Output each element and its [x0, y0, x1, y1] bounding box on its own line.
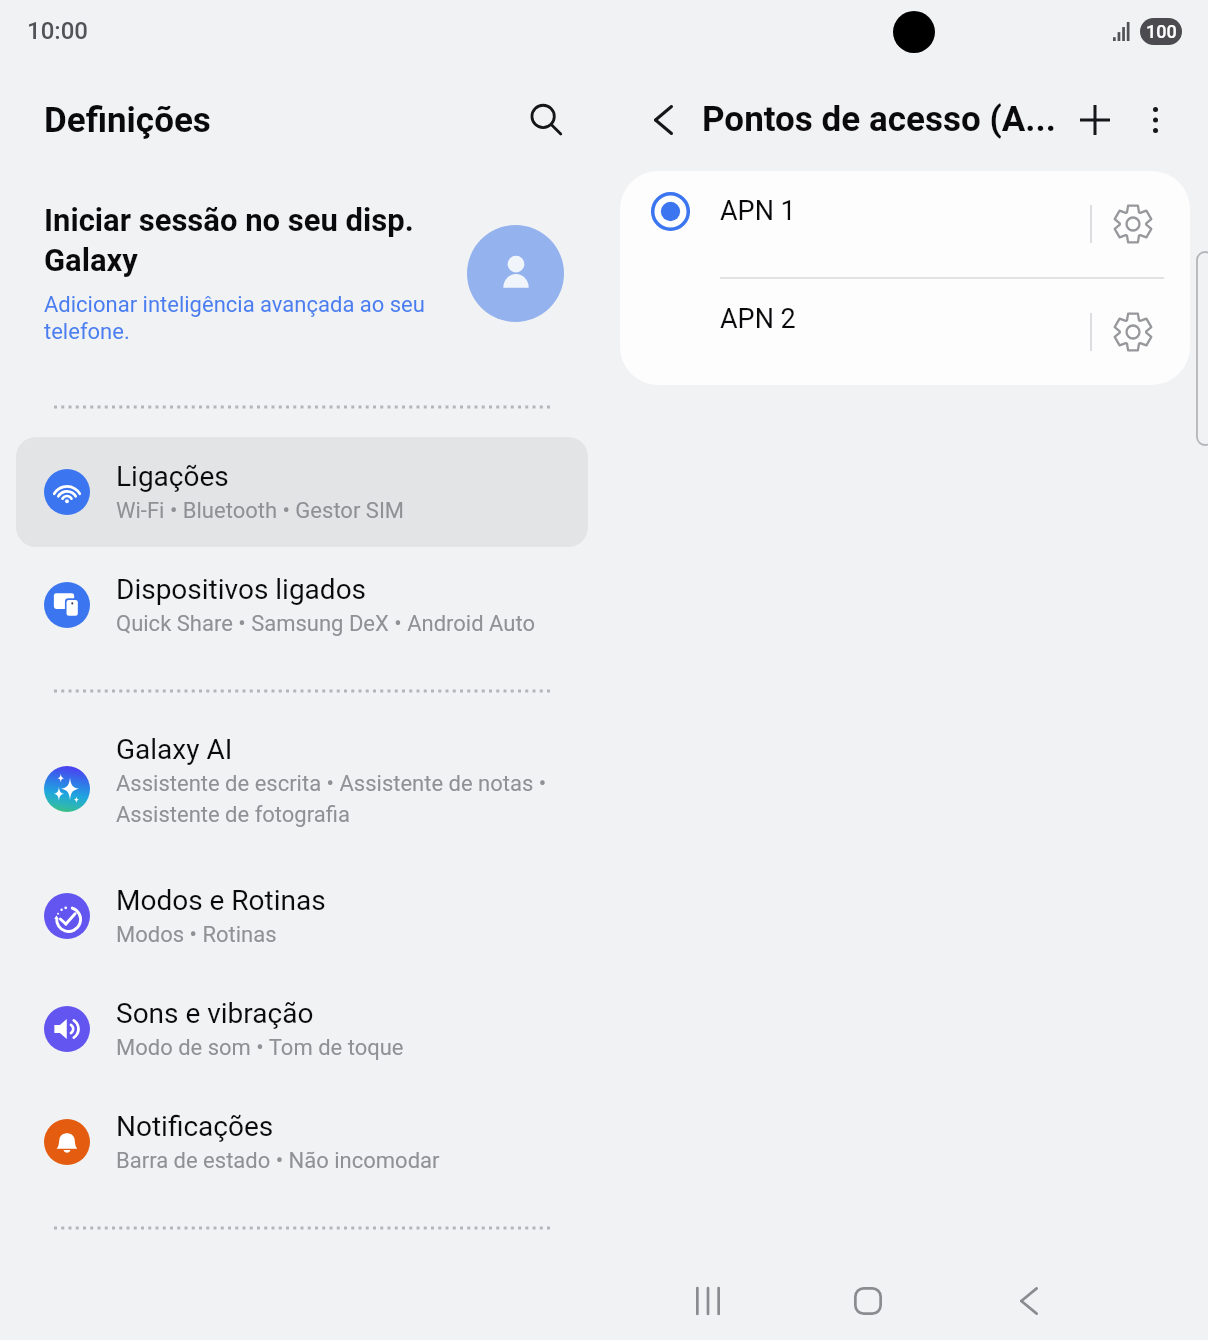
- button[interactable]: APN 1: [620, 171, 1190, 277]
- button[interactable]: Galaxy AI: [16, 716, 588, 844]
- button[interactable]: Iniciar sessão no seu disp. Galaxy: [0, 178, 604, 403]
- staticText: Adicionar inteligência avançada ao seu t…: [44, 292, 451, 345]
- button[interactable]: Back: [984, 1256, 1074, 1340]
- button[interactable]: Notificações: [16, 1087, 588, 1197]
- staticText: Modos • Rotinas: [116, 922, 277, 948]
- button[interactable]: Home: [823, 1256, 913, 1340]
- button[interactable]: APN settings: [1102, 301, 1164, 363]
- staticText: Assistente de escrita • Assistente de no…: [116, 771, 572, 827]
- staticText: Definições: [44, 100, 211, 141]
- staticText: 100: [1146, 21, 1177, 42]
- staticText: Quick Share • Samsung DeX • Android Auto: [116, 611, 535, 637]
- button[interactable]: Ligações: [16, 437, 588, 547]
- staticText: APN 1: [720, 195, 1086, 227]
- button[interactable]: APN settings: [1102, 193, 1164, 255]
- staticText: Wi-Fi • Bluetooth • Gestor SIM: [116, 498, 405, 524]
- button[interactable]: Recents: [663, 1256, 753, 1340]
- button[interactable]: Sons e vibração: [16, 974, 588, 1084]
- staticText: Iniciar sessão no seu disp. Galaxy: [44, 202, 451, 279]
- staticText: Barra de estado • Não incomodar: [116, 1148, 440, 1174]
- button[interactable]: APN 2: [620, 279, 1190, 385]
- staticText: Sons e vibração: [116, 997, 314, 1030]
- button[interactable]: Dispositivos ligados: [16, 550, 588, 660]
- staticText: Modos e Rotinas: [116, 884, 326, 917]
- button[interactable]: More options: [1126, 91, 1184, 149]
- button[interactable]: Modos e Rotinas: [16, 861, 588, 971]
- button[interactable]: Search: [517, 91, 575, 149]
- staticText: 10:00: [27, 17, 88, 45]
- button[interactable]: Navigate up: [634, 91, 692, 149]
- staticText: Modo de som • Tom de toque: [116, 1035, 404, 1061]
- staticText: Notificações: [116, 1110, 274, 1143]
- staticText: Dispositivos ligados: [116, 573, 367, 606]
- staticText: Galaxy AI: [116, 733, 233, 766]
- staticText: APN 2: [720, 303, 1086, 335]
- button[interactable]: Add APN: [1066, 91, 1124, 149]
- staticText: Ligações: [116, 460, 229, 493]
- staticText: Pontos de acesso (A...: [702, 99, 1066, 140]
